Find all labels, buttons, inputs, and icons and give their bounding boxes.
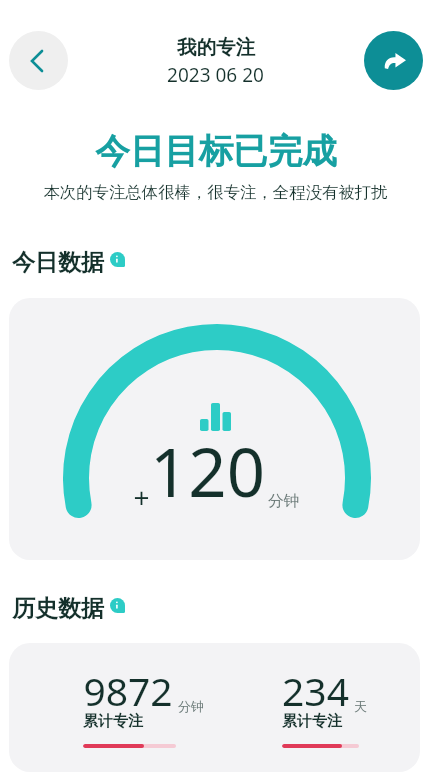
button[interactable]: 历史数据 [12, 594, 125, 623]
button[interactable]: 今日数据 [12, 248, 125, 277]
other: Info [110, 252, 125, 267]
staticText: 今日数据 [12, 248, 104, 277]
staticText: 9872 [83, 664, 173, 717]
staticText: 120 [150, 425, 265, 516]
staticText: 234 [282, 664, 349, 717]
button[interactable]: 9872 [83, 664, 204, 748]
staticText: 累计专注 [83, 712, 143, 731]
button[interactable]: Share [364, 31, 423, 90]
staticText: 天 [354, 698, 367, 714]
staticText: 分钟 [178, 698, 204, 714]
staticText: 今日目标已完成 [95, 130, 337, 173]
other: Info [110, 598, 125, 613]
button[interactable]: 234 [282, 664, 367, 748]
staticText: 本次的专注总体很棒，很专注，全程没有被打扰 [43, 182, 388, 203]
staticText: 分钟 [268, 491, 299, 511]
staticText: 历史数据 [12, 594, 104, 623]
button[interactable]: Back [9, 31, 68, 90]
staticText: 我的专注 [177, 35, 255, 60]
staticText: 2023 06 20 [167, 62, 264, 88]
staticText: + [133, 478, 150, 516]
staticText: 累计专注 [282, 712, 342, 731]
